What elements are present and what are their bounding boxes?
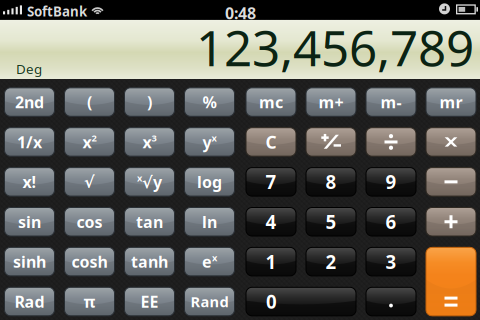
button[interactable]: 5 — [306, 207, 356, 236]
staticText: Rad — [14, 291, 44, 312]
staticText: x — [82, 131, 91, 152]
button[interactable]: x — [124, 128, 174, 156]
staticText: sin — [18, 211, 41, 232]
button[interactable]: cosh — [64, 247, 114, 276]
button[interactable]: π — [64, 287, 114, 316]
button[interactable]: Rand — [184, 287, 234, 316]
staticText: e — [202, 251, 212, 272]
staticText: C — [265, 130, 276, 153]
button[interactable] — [426, 247, 476, 316]
staticText: 2 — [91, 132, 96, 144]
button[interactable]: 1 — [246, 247, 296, 276]
button[interactable]: 2 — [306, 247, 356, 276]
staticText: cosh — [71, 251, 107, 272]
staticText: 5 — [325, 209, 336, 234]
staticText: √y — [142, 171, 162, 192]
staticText: x — [137, 172, 142, 184]
button[interactable]: 0 — [246, 287, 356, 316]
button[interactable]: √ — [64, 168, 114, 196]
button[interactable] — [426, 168, 476, 196]
staticText: mc — [259, 91, 283, 113]
button[interactable] — [426, 128, 476, 156]
staticText: 6 — [385, 209, 396, 234]
button[interactable]: log — [184, 168, 234, 196]
staticText: Rand — [190, 292, 228, 311]
staticText: 2 — [325, 249, 336, 274]
button[interactable]: 7 — [246, 168, 296, 196]
button[interactable]: 4 — [246, 207, 296, 236]
staticText: x! — [22, 171, 36, 192]
staticText: 3 — [151, 132, 156, 144]
staticText: 8 — [325, 169, 336, 194]
button[interactable] — [306, 128, 356, 156]
button[interactable]: mr — [426, 88, 476, 116]
staticText: tanh — [131, 251, 168, 272]
button[interactable]: e — [184, 247, 234, 276]
staticText: 0:48 — [225, 2, 256, 24]
button[interactable]: Rad — [4, 287, 54, 316]
button[interactable]: x — [64, 128, 114, 156]
button[interactable]: C — [246, 128, 296, 156]
staticText: cos — [76, 211, 102, 232]
button[interactable]: m+ — [306, 88, 356, 116]
staticText: x — [142, 131, 151, 152]
button[interactable] — [426, 207, 476, 236]
staticText: 0 — [266, 289, 277, 314]
button[interactable]: 3 — [366, 247, 416, 276]
staticText: 4 — [265, 209, 276, 234]
button[interactable]: % — [184, 88, 234, 116]
staticText: 123,456,789 — [196, 14, 474, 80]
button[interactable]: 1/x — [4, 128, 54, 156]
staticText: Deg — [16, 60, 42, 78]
staticText: m- — [380, 91, 401, 113]
staticText: ( — [87, 91, 92, 113]
button[interactable]: sin — [4, 207, 54, 236]
staticText: log — [197, 171, 222, 192]
button[interactable]: x! — [4, 168, 54, 196]
button[interactable] — [366, 128, 416, 156]
button[interactable]: tan — [124, 207, 174, 236]
button[interactable]: ln — [184, 207, 234, 236]
staticText: % — [202, 91, 216, 113]
button[interactable]: cos — [64, 207, 114, 236]
staticText: m+ — [318, 91, 343, 113]
staticText: SoftBank — [27, 2, 87, 20]
button[interactable]: 8 — [306, 168, 356, 196]
button[interactable]: EE — [124, 287, 174, 316]
staticText: sinh — [13, 251, 46, 272]
staticText: y — [202, 131, 211, 152]
staticText: ) — [147, 91, 152, 113]
staticText: 3 — [385, 249, 396, 274]
button[interactable]: 9 — [366, 168, 416, 196]
staticText: 9 — [385, 169, 396, 194]
button[interactable]: tanh — [124, 247, 174, 276]
button[interactable]: sinh — [4, 247, 54, 276]
staticText: 2nd — [15, 91, 44, 113]
staticText: tan — [136, 211, 163, 232]
button[interactable]: ) — [124, 88, 174, 116]
button[interactable]: 6 — [366, 207, 416, 236]
staticText: 1/x — [17, 131, 42, 152]
staticText: mr — [439, 91, 462, 113]
staticText: √ — [84, 173, 95, 191]
staticText: x — [212, 251, 217, 264]
staticText: EE — [140, 291, 158, 312]
button[interactable] — [366, 287, 416, 316]
staticText: ln — [202, 211, 217, 232]
staticText: x — [211, 132, 216, 144]
staticText: π — [83, 291, 95, 312]
staticText: 1 — [265, 249, 276, 274]
button[interactable]: y — [184, 128, 234, 156]
button[interactable]: ( — [64, 88, 114, 116]
button[interactable]: mc — [246, 88, 296, 116]
button[interactable]: x — [124, 168, 174, 196]
button[interactable]: 2nd — [4, 88, 54, 116]
button[interactable]: m- — [366, 88, 416, 116]
staticText: 7 — [265, 169, 276, 194]
